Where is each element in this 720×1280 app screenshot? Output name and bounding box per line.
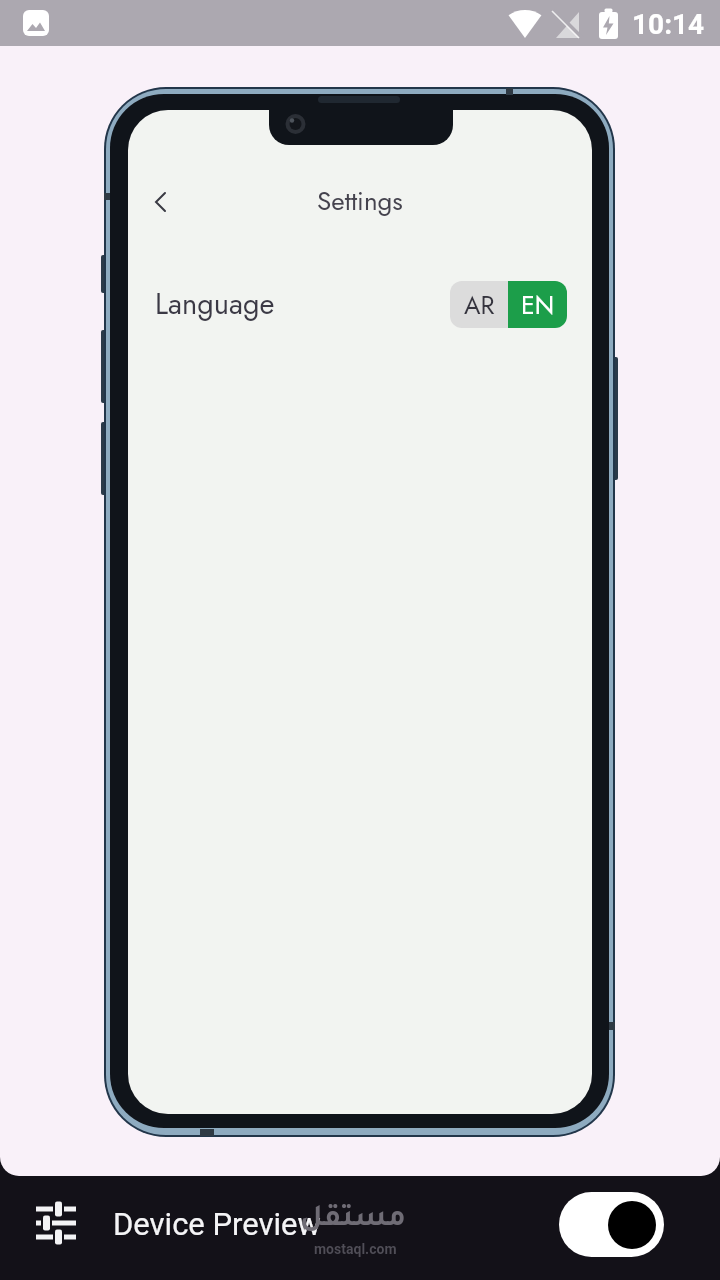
staticText: مستقل (300, 1205, 406, 1236)
staticText: Language (155, 283, 275, 325)
button[interactable] (30, 1198, 82, 1244)
button[interactable]: AR (450, 281, 508, 328)
staticText: EN (521, 287, 555, 323)
button[interactable]: EN (508, 281, 567, 328)
staticText: mostaql.com (314, 1241, 397, 1257)
staticText: Settings (317, 182, 403, 220)
staticText: Device Preview (113, 1206, 321, 1242)
button[interactable] (140, 180, 184, 224)
button[interactable] (559, 1192, 664, 1257)
staticText: AR (464, 287, 495, 323)
staticText: 10:14 (632, 8, 705, 41)
